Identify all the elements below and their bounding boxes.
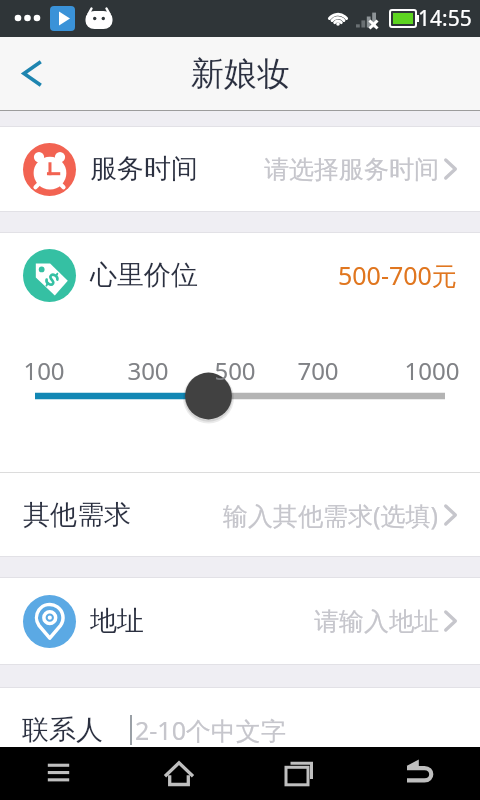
button[interactable]: Recents [240,747,360,800]
button[interactable]: Home [120,747,240,800]
button[interactable]: Menu [0,747,120,800]
staticText: 14:55 [418,4,472,33]
staticText: 请选择服务时间 [264,154,439,185]
staticText: 其他需求 [23,498,131,532]
button[interactable]: Back [0,37,62,110]
staticText: 500-700元 [338,258,457,292]
staticText: 心里价位 [90,258,198,292]
staticText: 300 [108,354,188,387]
button[interactable]: 其他需求 [0,473,480,556]
button[interactable]: 服务时间 [0,127,480,211]
staticText: 500 [195,354,275,387]
staticText: 请输入地址 [314,606,439,637]
staticText: 100 [4,354,84,387]
staticText: 输入其他需求(选填) [223,498,439,532]
staticText: 700 [278,354,358,387]
staticText: 地址 [90,604,144,638]
staticText: 新娘妆 [191,53,290,95]
button[interactable]: 联系人 [0,688,480,772]
staticText: 服务时间 [90,152,198,186]
staticText: 1000 [392,354,472,387]
staticText: 联系人 [22,713,103,747]
button[interactable]: 地址 [0,578,480,664]
button[interactable]: Back [360,747,480,800]
staticText: 2-10个中文字 [135,713,286,747]
